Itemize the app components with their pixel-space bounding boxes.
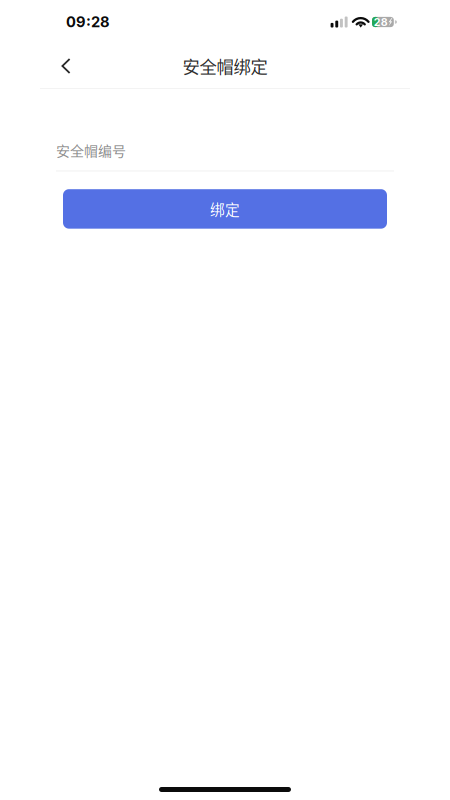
staticText: 09:28 xyxy=(66,13,110,31)
staticText: 安全帽绑定 xyxy=(182,53,267,79)
staticText: 28 xyxy=(374,15,388,28)
button[interactable]: 绑定 xyxy=(63,189,387,229)
staticText: 绑定 xyxy=(210,198,240,219)
button[interactable]: Back xyxy=(43,44,89,88)
staticText: 安全帽编号 xyxy=(56,140,126,160)
